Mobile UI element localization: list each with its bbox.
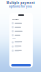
button[interactable] — [9, 21, 33, 25]
button[interactable] — [9, 64, 33, 68]
button[interactable] — [9, 33, 33, 37]
staticText: Payment — [12, 18, 19, 20]
button[interactable] — [9, 44, 33, 49]
button[interactable] — [9, 29, 33, 33]
button[interactable] — [9, 40, 33, 44]
button[interactable] — [9, 49, 33, 53]
staticText: options for you — [9, 5, 32, 8]
button[interactable] — [9, 25, 33, 29]
staticText: Multiple payment — [6, 1, 34, 5]
